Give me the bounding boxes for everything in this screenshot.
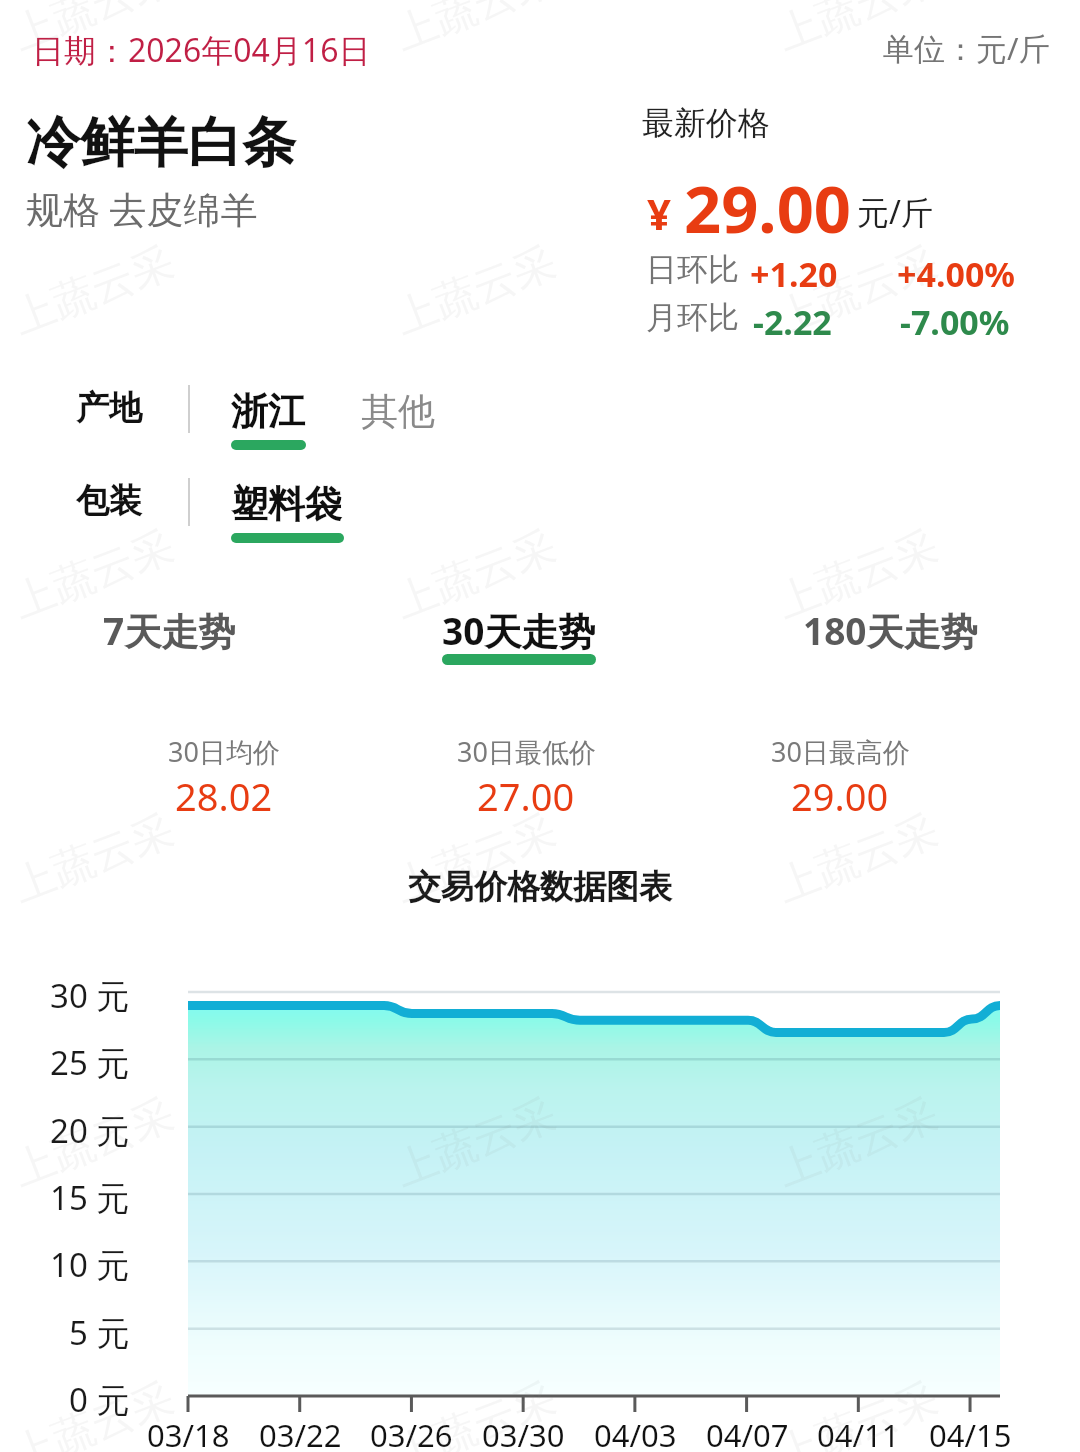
staticText: 月环比 <box>646 298 739 337</box>
button[interactable]: 其他 <box>347 376 450 452</box>
staticText: 浙江 <box>231 388 305 435</box>
staticText: +4.00% <box>897 251 1016 297</box>
staticText: 15 元 <box>50 1175 130 1220</box>
staticText: 单位：元/斤 <box>883 27 1050 69</box>
staticText: 元/斤 <box>857 190 933 234</box>
staticText: 27.00 <box>477 770 575 822</box>
staticText: 29.00 <box>684 164 851 253</box>
staticText: 20 元 <box>50 1108 130 1153</box>
button[interactable]: 180天走势 <box>785 589 993 681</box>
button[interactable]: 30天走势 <box>424 589 614 681</box>
staticText: 03/30 <box>482 1414 565 1452</box>
staticText: 04/11 <box>817 1414 900 1452</box>
staticText: ¥ <box>647 185 672 242</box>
staticText: 30日最高价 <box>771 733 910 770</box>
staticText: 04/15 <box>929 1414 1012 1452</box>
staticText: 30 元 <box>50 973 130 1018</box>
button[interactable]: 浙江 <box>217 376 320 452</box>
staticText: 29.00 <box>791 770 889 822</box>
staticText: 04/03 <box>594 1414 677 1452</box>
staticText: -7.00% <box>900 299 1010 345</box>
staticText: 塑料袋 <box>231 481 342 528</box>
staticText: -2.22 <box>753 299 832 345</box>
button[interactable]: 7天走势 <box>85 589 254 681</box>
staticText: 30日最低价 <box>457 733 596 770</box>
staticText: 25 元 <box>50 1040 130 1085</box>
staticText: 7天走势 <box>103 605 236 656</box>
staticText: 10 元 <box>50 1242 130 1287</box>
staticText: 03/22 <box>259 1414 342 1452</box>
staticText: +1.20 <box>750 251 838 297</box>
staticText: 包装 <box>76 480 142 522</box>
button[interactable]: 塑料袋 <box>217 469 358 545</box>
staticText: 产地 <box>76 387 142 429</box>
staticText: 03/26 <box>370 1414 453 1452</box>
staticText: 其他 <box>361 388 435 435</box>
staticText: 30天走势 <box>442 605 596 656</box>
staticText: 04/07 <box>706 1414 789 1452</box>
staticText: 规格 去皮绵羊 <box>26 183 258 234</box>
staticText: 最新价格 <box>642 103 770 143</box>
staticText: 28.02 <box>175 770 273 822</box>
staticText: 0 元 <box>69 1377 130 1422</box>
staticText: 180天走势 <box>803 605 978 656</box>
staticText: 30日均价 <box>168 733 280 770</box>
staticText: 冷鲜羊白条 <box>26 109 296 177</box>
staticText: 03/18 <box>147 1414 230 1452</box>
staticText: 日期：2026年04月16日 <box>32 28 371 72</box>
staticText: 日环比 <box>646 250 739 289</box>
staticText: 5 元 <box>69 1310 130 1355</box>
staticText: 交易价格数据图表 <box>0 866 1080 908</box>
